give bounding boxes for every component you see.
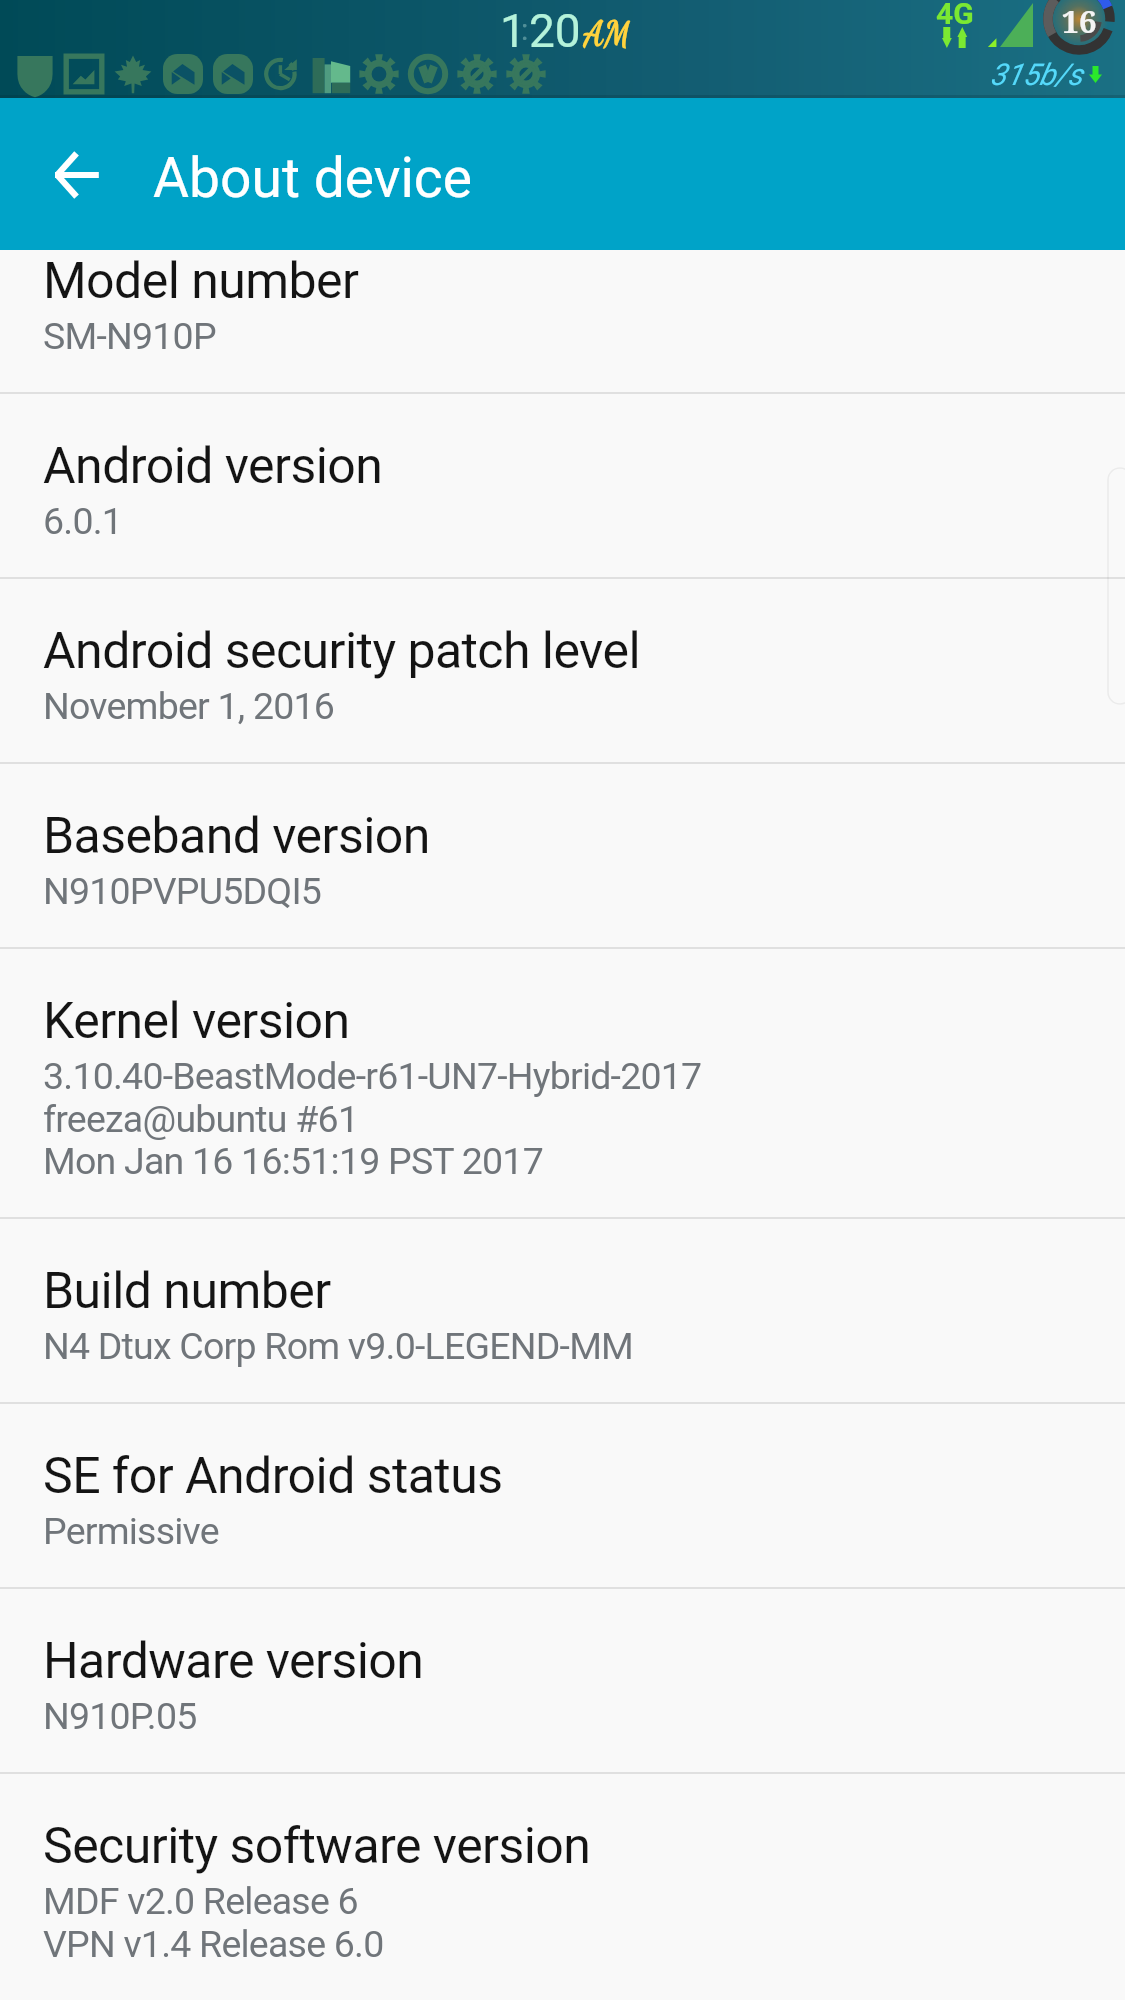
button[interactable]: Android security patch level — [0, 579, 1125, 762]
staticText: N910P.05 — [43, 1694, 197, 1738]
staticText: N910PVPU5DQI5 — [43, 869, 322, 913]
staticText: Android version — [43, 437, 383, 496]
button[interactable]: Security software version — [0, 1774, 1125, 2000]
button[interactable]: Model number — [0, 250, 1125, 392]
staticText: N4 Dtux Corp Rom v9.0-LEGEND-MM — [43, 1324, 634, 1368]
staticText: MDF v2.0 Release 6 VPN v1.4 Release 6.0 — [43, 1879, 384, 1966]
staticText: Build number — [43, 1262, 331, 1321]
staticText: Model number — [43, 252, 359, 311]
staticText: 16 — [1057, 0, 1101, 42]
staticText: 20 — [529, 4, 581, 58]
staticText: 315b/s — [990, 57, 1083, 92]
staticText: Kernel version — [43, 992, 350, 1051]
staticText: 1 — [500, 4, 526, 58]
button[interactable]: Android version — [0, 394, 1125, 577]
staticText: 4G — [936, 0, 974, 31]
staticText: SE for Android status — [43, 1447, 503, 1506]
staticText: About device — [153, 146, 472, 211]
staticText: 6.0.1 — [43, 499, 123, 543]
staticText: Permissive — [43, 1509, 219, 1553]
staticText: AM — [584, 14, 631, 55]
staticText: Security software version — [43, 1817, 591, 1876]
staticText: 3.10.40-BeastMode-r61-UN7-Hybrid-2017 fr… — [43, 1054, 702, 1183]
staticText: SM-N910P — [43, 314, 216, 358]
button[interactable]: Build number — [0, 1219, 1125, 1402]
staticText: Hardware version — [43, 1632, 424, 1691]
button[interactable]: Back — [33, 131, 121, 219]
staticText: Baseband version — [43, 807, 430, 866]
staticText: November 1, 2016 — [43, 684, 335, 728]
staticText: : — [521, 12, 529, 47]
button[interactable]: SE for Android status — [0, 1404, 1125, 1587]
button[interactable]: Kernel version — [0, 949, 1125, 1217]
staticText: Android security patch level — [43, 622, 641, 681]
button[interactable]: Hardware version — [0, 1589, 1125, 1772]
button[interactable]: Baseband version — [0, 764, 1125, 947]
